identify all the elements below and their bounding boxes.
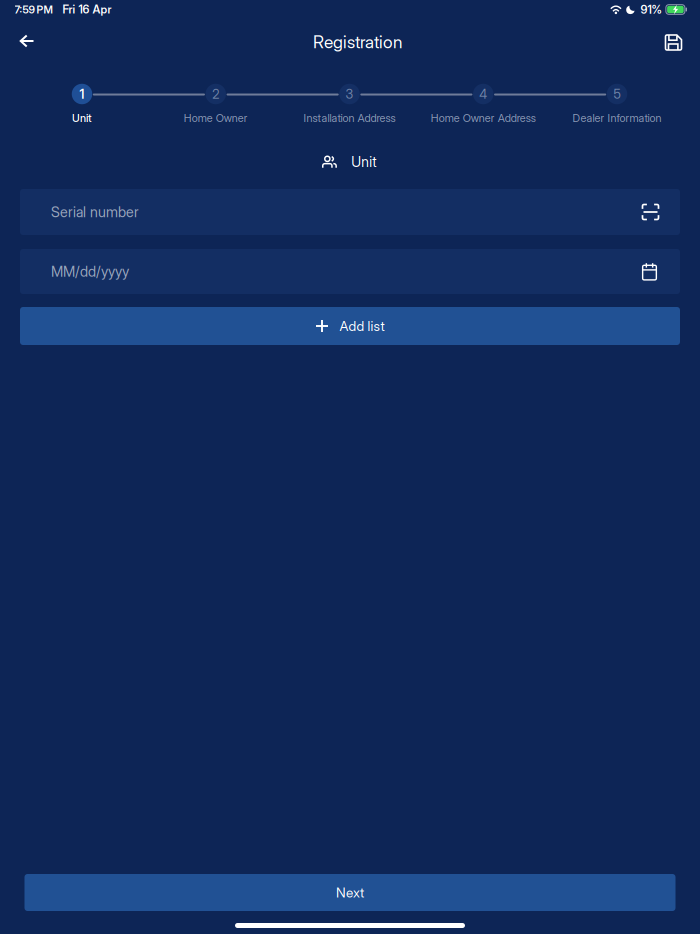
- staticText: Serial number: [51, 203, 139, 221]
- staticText: 5: [613, 86, 620, 102]
- button[interactable]: Choose date: [635, 256, 663, 286]
- staticText: Next: [336, 884, 364, 901]
- button[interactable]: Back: [3, 19, 51, 63]
- staticText: Unit: [351, 153, 376, 170]
- staticText: MM/dd/yyyy: [51, 263, 129, 280]
- staticText: Installation Address: [303, 111, 395, 125]
- staticText: Dealer Information: [572, 111, 661, 125]
- staticText: Registration: [313, 31, 402, 52]
- staticText: 2: [212, 86, 219, 102]
- button[interactable]: Scan barcode: [636, 197, 664, 227]
- staticText: 3: [345, 86, 353, 102]
- button[interactable]: Next: [24, 874, 675, 911]
- button[interactable]: Add list: [20, 307, 680, 345]
- staticText: 4: [479, 86, 487, 102]
- staticText: 91%: [640, 3, 661, 16]
- staticText: 1: [79, 86, 84, 102]
- staticText: Home Owner: [184, 111, 248, 125]
- staticText: Add list: [339, 318, 384, 334]
- staticText: 7:59 PM: [14, 3, 52, 16]
- button[interactable]: Serial number: [20, 189, 680, 235]
- staticText: Fri 16 Apr: [62, 3, 111, 16]
- button[interactable]: Save: [649, 20, 697, 64]
- button[interactable]: MM/dd/yyyy: [20, 249, 680, 294]
- staticText: Unit: [72, 111, 92, 125]
- staticText: Home Owner Address: [431, 111, 536, 125]
